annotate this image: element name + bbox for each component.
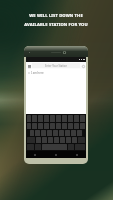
staticText: AVAILABLE STATION FOR YOU	[24, 22, 88, 28]
staticText: I am here	[31, 71, 44, 75]
button[interactable]: Enter Your Station	[32, 63, 80, 68]
button[interactable]: Back	[33, 153, 37, 157]
staticText: WE WILL LIST DOWN THE	[29, 13, 83, 19]
staticText: Enter Your Station	[45, 64, 68, 68]
button[interactable]: Account	[81, 64, 85, 68]
button[interactable]: Recents	[75, 153, 79, 157]
button[interactable]: Menu	[27, 64, 31, 68]
button[interactable]: Home	[54, 153, 58, 157]
